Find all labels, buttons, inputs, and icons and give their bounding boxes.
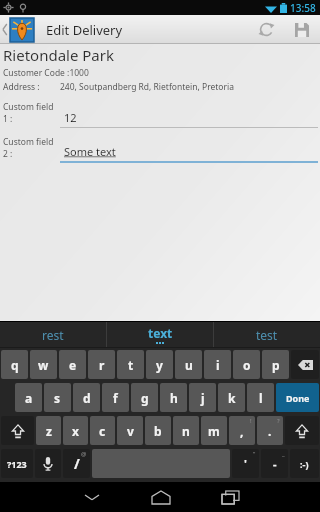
staticText: u (185, 357, 193, 373)
button[interactable]: z (36, 416, 61, 445)
button[interactable]: s (44, 383, 71, 412)
button[interactable]: Save (284, 15, 320, 44)
staticText: - (273, 456, 277, 471)
button[interactable]: Some text (60, 144, 318, 163)
button[interactable]: / (63, 449, 90, 478)
button[interactable]: r (88, 350, 115, 379)
staticText: b (154, 423, 162, 439)
staticText: " (253, 450, 256, 458)
other: Shift (11, 423, 25, 439)
button[interactable]: Shift (285, 416, 319, 445)
button[interactable]: w (30, 350, 57, 379)
staticText: f (113, 390, 118, 406)
button[interactable]: Recent apps (207, 482, 253, 512)
staticText: Some text (64, 144, 116, 159)
staticText: :-) (300, 458, 309, 470)
button[interactable]: v (117, 416, 143, 445)
staticText: test (256, 327, 278, 343)
staticText: Custom field 2 : (3, 136, 60, 160)
button[interactable]: d (73, 383, 100, 412)
staticText: Custom field 1 : (3, 101, 60, 125)
staticText: i (216, 357, 220, 373)
staticText: v (127, 423, 134, 439)
button[interactable]: - (261, 449, 288, 478)
button[interactable]: c (90, 416, 115, 445)
button[interactable]: u (175, 350, 202, 379)
staticText: q (11, 357, 19, 373)
staticText: Edit Delivery (46, 21, 123, 39)
staticText: d (83, 390, 91, 406)
staticText: ' (244, 456, 247, 471)
staticText: w (38, 357, 49, 373)
staticText: a (25, 390, 33, 406)
staticText: / (74, 454, 80, 473)
staticText: r (99, 357, 105, 373)
staticText: t (128, 357, 134, 373)
button[interactable]: :-) (290, 449, 319, 478)
staticText: ! (250, 417, 252, 425)
other: Shift (295, 423, 309, 439)
staticText: Rietondale Park (3, 45, 114, 65)
button[interactable]: a (15, 383, 42, 412)
staticText: h (170, 390, 178, 406)
button[interactable]: l (247, 383, 274, 412)
button[interactable]: p (262, 350, 289, 379)
button[interactable]: Home (138, 482, 184, 512)
staticText: Address : (3, 81, 60, 93)
button[interactable]: g (131, 383, 158, 412)
staticText: p (272, 357, 280, 373)
staticText: Done (286, 392, 310, 404)
button[interactable]: 12 (60, 110, 318, 128)
other: Voice input (43, 456, 53, 471)
button[interactable]: n (173, 416, 199, 445)
button[interactable]: rest (0, 322, 106, 347)
button[interactable]: , (229, 416, 255, 445)
staticText: m (208, 423, 220, 439)
staticText: 13:58 (290, 1, 316, 15)
button[interactable]: o (233, 350, 260, 379)
button[interactable]: Voice input (35, 449, 61, 478)
button[interactable]: e (59, 350, 86, 379)
button[interactable]: m (201, 416, 227, 445)
button[interactable]: t (117, 350, 144, 379)
button[interactable]: Back (0, 15, 38, 44)
button[interactable]: j (189, 383, 216, 412)
button[interactable]: x (63, 416, 88, 445)
staticText: 240, Soutpandberg Rd, Rietfontein, Preto… (60, 81, 234, 93)
staticText: n (182, 423, 190, 439)
button[interactable]: Done (276, 383, 319, 412)
button[interactable]: ' (232, 449, 259, 478)
staticText: . (268, 423, 272, 439)
button[interactable]: . (257, 416, 283, 445)
staticText: text (148, 325, 173, 341)
button[interactable]: Shift (1, 416, 34, 445)
button[interactable]: b (145, 416, 171, 445)
button[interactable]: Refresh (248, 15, 284, 44)
staticText: 12 (64, 110, 77, 125)
button[interactable]: Hide keyboard (68, 482, 115, 512)
button[interactable]: test (214, 322, 320, 347)
staticText: o (243, 357, 251, 373)
button[interactable]: f (102, 383, 129, 412)
button[interactable]: ?123 (1, 449, 33, 478)
staticText: ? (277, 417, 280, 425)
button[interactable]: y (146, 350, 173, 379)
staticText: e (69, 357, 77, 373)
other: Back (2, 24, 8, 35)
staticText: g (141, 390, 149, 406)
staticText: x (72, 423, 79, 439)
button[interactable]: text (107, 322, 213, 347)
staticText: , (240, 423, 244, 439)
staticText: z (46, 423, 52, 439)
button[interactable]: q (1, 350, 28, 379)
button[interactable]: k (218, 383, 245, 412)
button[interactable]: h (160, 383, 187, 412)
staticText: s (54, 390, 61, 406)
staticText: y (156, 357, 163, 373)
staticText: @ (81, 450, 87, 458)
staticText: j (201, 390, 205, 406)
staticText: l (259, 390, 263, 406)
button[interactable]: i (204, 350, 231, 379)
button[interactable]: Backspace (291, 350, 319, 379)
